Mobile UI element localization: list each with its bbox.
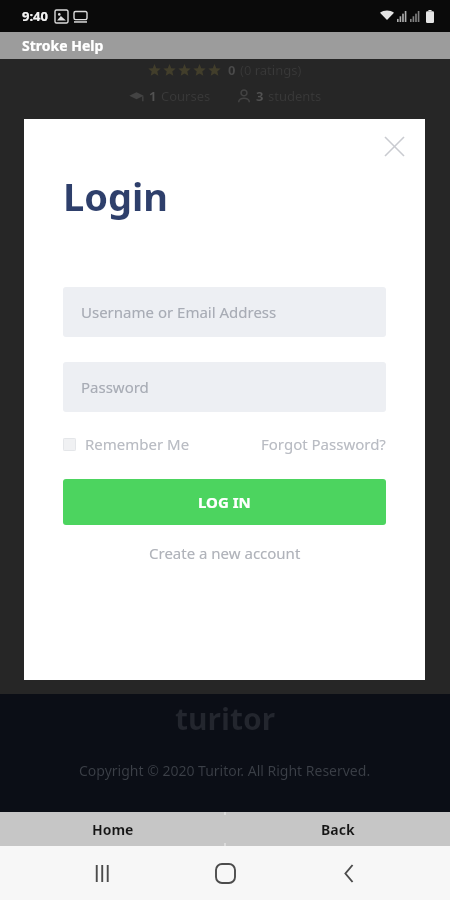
button[interactable]: Home bbox=[0, 812, 225, 846]
staticText: Login bbox=[63, 170, 169, 222]
staticText: turitor bbox=[175, 698, 276, 739]
staticText: students bbox=[268, 87, 322, 105]
staticText: 9:40 bbox=[22, 7, 48, 25]
staticText: Password bbox=[81, 377, 149, 397]
button[interactable]: Forgot Password? bbox=[261, 434, 386, 454]
staticText: Copyright © 2020 Turitor. All Right Rese… bbox=[79, 761, 371, 780]
button[interactable]: LOG IN bbox=[63, 479, 386, 525]
button[interactable]: Home bbox=[203, 851, 247, 895]
button[interactable]: Close bbox=[377, 129, 411, 163]
button[interactable]: Username or Email Address bbox=[63, 287, 386, 337]
button[interactable]: Back bbox=[327, 851, 371, 895]
staticText: Create a new account bbox=[149, 543, 301, 563]
staticText: Courses bbox=[161, 87, 211, 105]
staticText: (0 ratings) bbox=[240, 61, 302, 79]
staticText: Forgot Password? bbox=[261, 434, 386, 454]
button[interactable]: Remember Me bbox=[63, 434, 190, 454]
staticText: 0 bbox=[228, 61, 236, 79]
staticText: Stroke Help bbox=[22, 36, 104, 55]
staticText: Home bbox=[92, 820, 134, 839]
button[interactable]: Back bbox=[225, 812, 450, 846]
staticText: Username or Email Address bbox=[81, 302, 277, 322]
staticText: LOG IN bbox=[198, 492, 251, 512]
staticText: 1 bbox=[149, 87, 157, 105]
button[interactable]: Password bbox=[63, 362, 386, 412]
staticText: Back bbox=[321, 820, 355, 839]
button[interactable]: Recent apps bbox=[80, 851, 124, 895]
staticText: Remember Me bbox=[85, 434, 190, 454]
staticText: 3 bbox=[256, 87, 264, 105]
button[interactable]: Create a new account bbox=[63, 543, 386, 563]
